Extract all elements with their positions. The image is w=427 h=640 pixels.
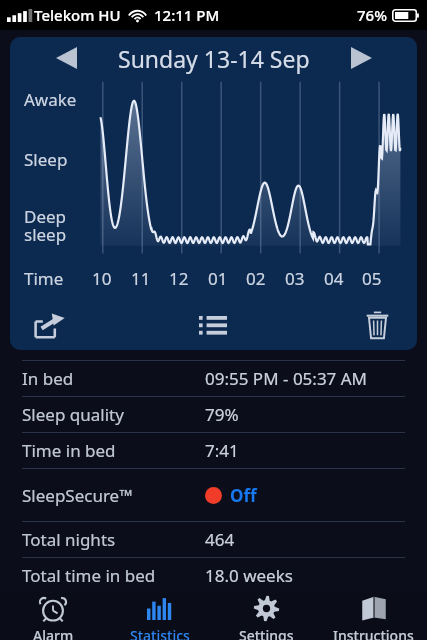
staticText: 464 <box>205 528 235 551</box>
staticText: Alarm <box>33 626 74 640</box>
staticText: 10 <box>92 267 112 290</box>
staticText: 7:41 <box>205 439 239 462</box>
button[interactable]: List view <box>191 303 235 347</box>
staticText: 12:11 PM <box>154 5 220 25</box>
staticText: 76% <box>357 5 387 25</box>
staticText: Awake <box>24 88 77 111</box>
button[interactable]: Settings <box>213 593 320 640</box>
staticText: Instructions <box>333 626 414 640</box>
staticText: Sleep quality <box>22 403 124 426</box>
staticText: 04 <box>324 267 344 290</box>
staticText: 02 <box>246 267 266 290</box>
staticText: Time <box>24 267 64 290</box>
staticText: 12 <box>169 267 189 290</box>
staticText: Deep <box>24 205 67 228</box>
staticText: Total time in bed <box>22 564 156 587</box>
staticText: 03 <box>285 267 305 290</box>
button[interactable]: Alarm <box>0 593 106 640</box>
staticText: 01 <box>208 267 228 290</box>
button[interactable]: Total nights <box>0 522 427 557</box>
staticText: SleepSecure™ <box>22 484 133 507</box>
staticText: Sleep <box>24 148 68 171</box>
staticText: Sunday 13-14 Sep <box>118 43 310 74</box>
button[interactable]: Share <box>28 303 72 347</box>
button[interactable]: Statistics <box>106 593 213 640</box>
staticText: 11 <box>131 267 151 290</box>
button[interactable]: Total time in bed <box>0 558 427 593</box>
button[interactable]: Delete <box>355 303 399 347</box>
button[interactable]: Sleep quality <box>0 397 427 432</box>
button[interactable]: Previous day <box>48 40 84 76</box>
button[interactable]: Time in bed <box>0 433 427 468</box>
staticText: Time in bed <box>22 439 116 462</box>
button[interactable]: Instructions <box>320 593 427 640</box>
staticText: 18.0 weeks <box>205 564 293 587</box>
button[interactable]: SleepSecure™ <box>0 469 427 521</box>
staticText: 05 <box>362 267 382 290</box>
staticText: Total nights <box>22 528 116 551</box>
staticText: sleep <box>24 223 67 246</box>
staticText: Telekom HU <box>34 5 121 25</box>
button[interactable]: Next day <box>343 40 379 76</box>
staticText: Off <box>230 484 257 507</box>
staticText: Settings <box>239 626 294 640</box>
staticText: 09:55 PM - 05:37 AM <box>205 367 368 390</box>
staticText: Statistics <box>130 626 190 640</box>
staticText: In bed <box>22 367 74 390</box>
button[interactable]: In bed <box>0 361 427 396</box>
staticText: 79% <box>205 403 239 426</box>
